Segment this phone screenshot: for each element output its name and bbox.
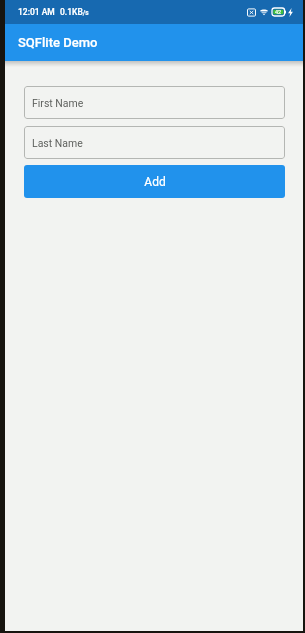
- other: Wi-Fi: [260, 8, 268, 16]
- other: No SIM card: [247, 8, 256, 17]
- staticText: 12:01 AM: [18, 7, 55, 17]
- staticText: Last Name: [32, 137, 83, 149]
- button[interactable]: First Name: [24, 86, 285, 119]
- staticText: First Name: [32, 97, 84, 109]
- other: Battery 42 percent: [272, 8, 286, 16]
- button[interactable]: Add: [24, 165, 285, 198]
- other: Charging: [288, 8, 293, 17]
- staticText: 0.1KB/s: [60, 7, 89, 17]
- staticText: SQFlite Demo: [18, 35, 98, 50]
- button[interactable]: Last Name: [24, 126, 285, 159]
- staticText: Add: [144, 175, 166, 189]
- staticText: 42: [275, 9, 282, 15]
